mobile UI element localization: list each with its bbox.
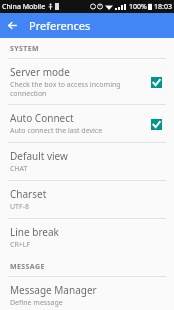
button[interactable]: Default view (0, 143, 174, 180)
staticText: Check the box to access incoming connect… (10, 80, 140, 98)
staticText: Default view (10, 149, 68, 163)
staticText: 100% (129, 2, 147, 12)
staticText: Define message (10, 298, 63, 308)
button[interactable]: Server mode (0, 59, 174, 104)
staticText: Charset (10, 187, 47, 201)
button[interactable]: Auto Connect (0, 105, 174, 142)
staticText: CHAT (10, 164, 28, 174)
staticText: UTF-8 (10, 202, 29, 212)
staticText: Preferences (29, 18, 91, 33)
staticText: Server mode (10, 65, 70, 79)
staticText: Auto Connect (10, 111, 74, 125)
staticText: China Mobile (2, 2, 46, 12)
button[interactable]: Message Manager (0, 277, 174, 310)
button[interactable]: Line break (0, 219, 174, 256)
staticText: Line break (10, 225, 59, 239)
staticText: Auto connect the last device (10, 126, 103, 136)
staticText: 18:03 (154, 2, 172, 12)
staticText: SYSTEM (10, 44, 40, 54)
button[interactable]: Charset (0, 181, 174, 218)
staticText: MESSAGE (10, 262, 45, 272)
button[interactable]: Back (0, 13, 25, 38)
staticText: CR+LF (10, 240, 31, 250)
staticText: Message Manager (10, 283, 97, 297)
